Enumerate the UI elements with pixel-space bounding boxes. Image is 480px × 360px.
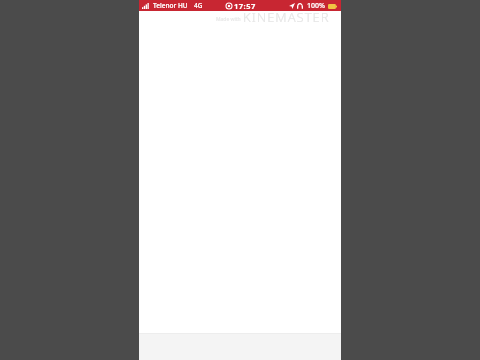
other: Mobile signal strength xyxy=(142,3,149,9)
other: Location in use xyxy=(289,3,295,9)
staticText: Telenor HU xyxy=(153,1,188,10)
staticText: KINEMASTER xyxy=(243,8,330,26)
staticText: 100% xyxy=(307,1,325,11)
other: Headset connected xyxy=(297,3,303,9)
staticText: 4G xyxy=(194,1,203,10)
staticText: 17:57 xyxy=(234,1,256,11)
staticText: Made with xyxy=(216,16,241,23)
other: Alarm set xyxy=(226,3,232,9)
other: Battery 100 percent xyxy=(328,4,337,9)
